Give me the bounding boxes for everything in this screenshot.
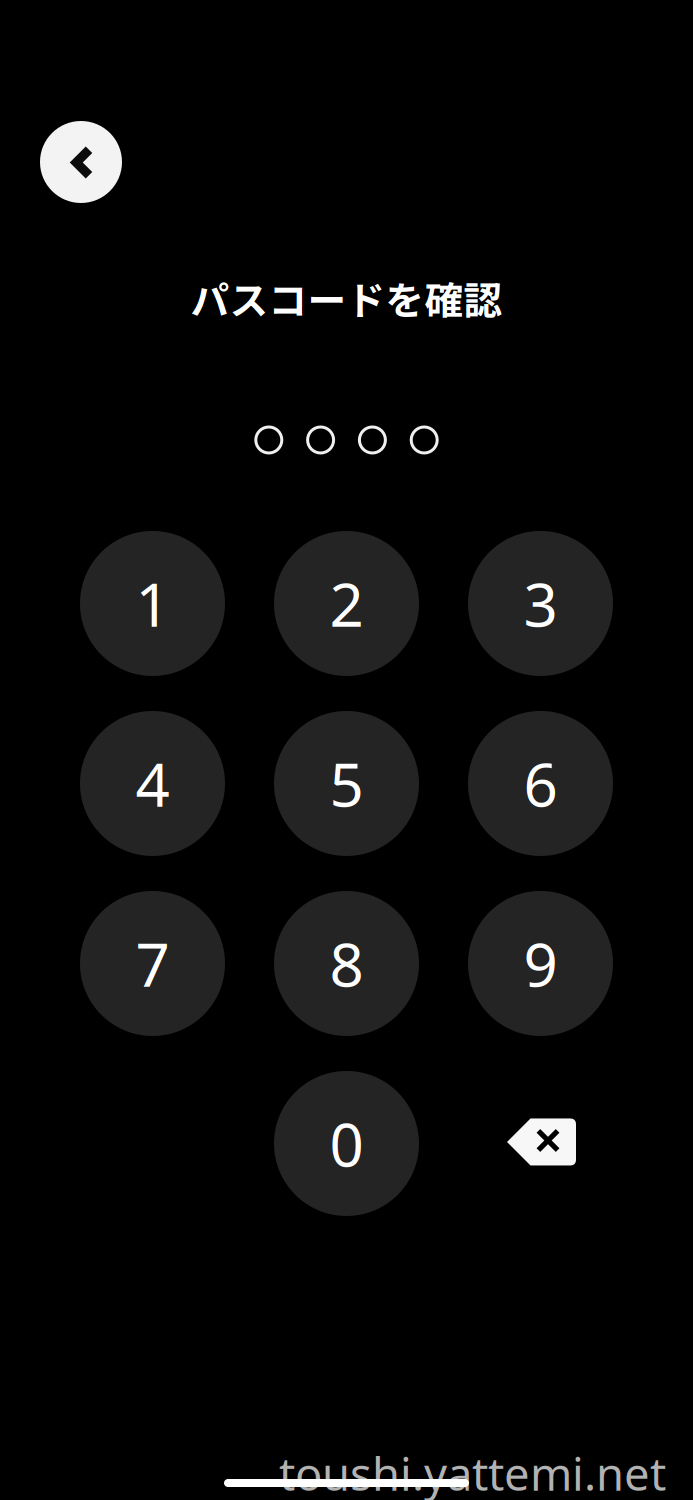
button[interactable]: 8 (274, 891, 419, 1036)
staticText: 1 (135, 564, 169, 643)
button[interactable]: 5 (274, 711, 419, 856)
staticText: 9 (523, 924, 557, 1003)
button[interactable]: 6 (468, 711, 613, 856)
staticText: 2 (329, 564, 363, 643)
button[interactable]: 3 (468, 531, 613, 676)
button[interactable]: 9 (468, 891, 613, 1036)
staticText: 7 (135, 924, 169, 1003)
staticText: 3 (523, 564, 557, 643)
button[interactable]: 2 (274, 531, 419, 676)
staticText: 0 (329, 1104, 363, 1183)
staticText: パスコードを確認 (190, 270, 502, 326)
button[interactable]: 1 (80, 531, 225, 676)
staticText: 4 (135, 744, 169, 823)
button[interactable]: Back (40, 121, 122, 203)
staticText: 8 (329, 924, 363, 1003)
button[interactable]: 0 (274, 1071, 419, 1216)
staticText: 5 (329, 744, 363, 823)
button[interactable]: Delete (468, 1071, 613, 1216)
staticText: 6 (523, 744, 557, 823)
staticText: toushi.yattemi.net (279, 1443, 666, 1500)
button[interactable]: 4 (80, 711, 225, 856)
button[interactable]: 7 (80, 891, 225, 1036)
